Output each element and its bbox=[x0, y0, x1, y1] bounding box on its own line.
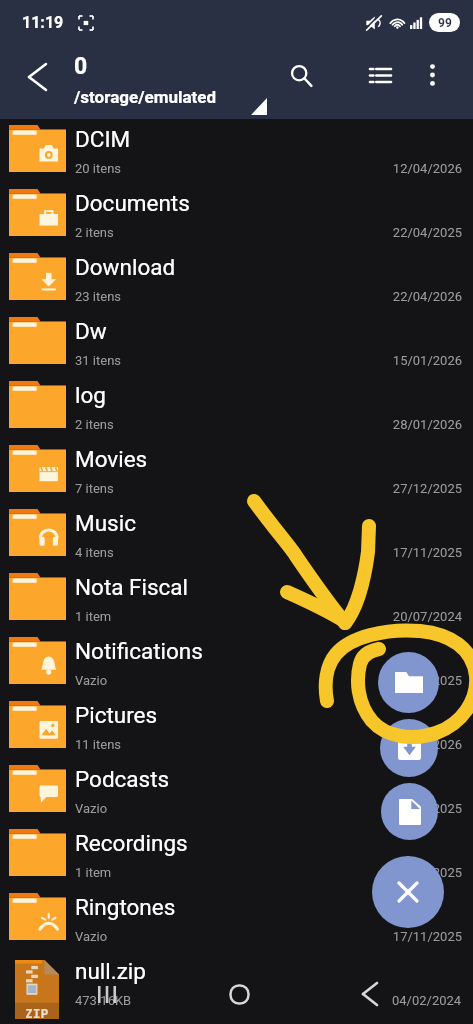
button[interactable]: Movies bbox=[0, 439, 473, 503]
button[interactable]: log bbox=[0, 375, 473, 439]
staticText: Recordings bbox=[75, 830, 188, 856]
button[interactable]: Documents bbox=[0, 183, 473, 247]
staticText: 11 itens bbox=[75, 737, 122, 752]
button[interactable]: Import bbox=[380, 719, 438, 777]
staticText: 1 item bbox=[75, 609, 112, 624]
staticText: 17/11/2025 bbox=[392, 929, 462, 944]
staticText: 13/11/2025 bbox=[392, 865, 462, 880]
staticText: 2 itens bbox=[75, 225, 114, 240]
staticText: 27/12/2025 bbox=[392, 481, 462, 496]
button[interactable]: Close bbox=[372, 856, 444, 928]
button[interactable]: Dw bbox=[0, 311, 473, 375]
staticText: Nota Fiscal bbox=[75, 574, 189, 600]
button[interactable]: Ringtones bbox=[0, 887, 473, 951]
button[interactable]: DCIM bbox=[0, 119, 473, 183]
button[interactable]: Back bbox=[348, 972, 392, 1016]
staticText: Documents bbox=[75, 190, 190, 216]
staticText: ZIP bbox=[25, 1004, 49, 1022]
button[interactable]: Home bbox=[217, 972, 261, 1016]
button[interactable]: Back bbox=[16, 56, 58, 98]
staticText: Dw bbox=[75, 318, 107, 344]
staticText: Vazio bbox=[75, 801, 108, 816]
button[interactable]: Podcasts bbox=[0, 759, 473, 823]
staticText: Vazio bbox=[75, 929, 108, 944]
staticText: Movies bbox=[75, 446, 148, 472]
staticText: 12/04/2026 bbox=[392, 161, 462, 176]
staticText: Ringtones bbox=[75, 894, 176, 920]
staticText: 473.16KB bbox=[75, 993, 132, 1008]
staticText: Download bbox=[75, 254, 176, 280]
staticText: DCIM bbox=[75, 126, 131, 152]
staticText: Vazio bbox=[75, 673, 108, 688]
staticText: 4 itens bbox=[75, 545, 114, 560]
button[interactable]: View mode bbox=[358, 53, 402, 97]
staticText: 13/11/2025 bbox=[392, 673, 462, 688]
button[interactable]: Download bbox=[0, 247, 473, 311]
staticText: 7 itens bbox=[75, 481, 114, 496]
staticText: 2 itens bbox=[75, 417, 114, 432]
staticText: 15/01/2026 bbox=[392, 353, 462, 368]
button[interactable]: Nota Fiscal bbox=[0, 567, 473, 631]
staticText: 04/02/2024 bbox=[392, 993, 462, 1008]
staticText: 13/11/2025 bbox=[392, 801, 462, 816]
button[interactable]: Recents bbox=[87, 974, 127, 1014]
staticText: 31 itens bbox=[75, 353, 122, 368]
staticText: 20/07/2024 bbox=[392, 609, 462, 624]
staticText: 11:19 bbox=[22, 13, 64, 32]
staticText: null.zip bbox=[75, 958, 146, 984]
staticText: 23 itens bbox=[75, 289, 122, 304]
staticText: 20 itens bbox=[75, 161, 122, 176]
button[interactable]: Search bbox=[279, 53, 323, 97]
staticText: 99 bbox=[438, 16, 452, 30]
button[interactable]: Pictures bbox=[0, 695, 473, 759]
staticText: 22/04/2026 bbox=[392, 737, 462, 752]
button[interactable]: Music bbox=[0, 503, 473, 567]
staticText: Podcasts bbox=[75, 766, 170, 792]
button[interactable]: Notifications bbox=[0, 631, 473, 695]
staticText: Pictures bbox=[75, 702, 158, 728]
button[interactable]: New folder bbox=[378, 652, 439, 713]
button[interactable]: ZIP bbox=[0, 951, 473, 1015]
staticText: 1 item bbox=[75, 865, 112, 880]
button[interactable]: More options bbox=[410, 53, 454, 97]
button[interactable]: New file bbox=[381, 783, 438, 840]
staticText: Music bbox=[75, 510, 136, 536]
staticText: 22/04/2026 bbox=[392, 289, 462, 304]
staticText: 17/11/2025 bbox=[392, 545, 462, 560]
staticText: 22/04/2025 bbox=[392, 225, 462, 240]
staticText: /storage/emulated bbox=[74, 87, 217, 107]
staticText: Notifications bbox=[75, 638, 203, 664]
button[interactable]: Recordings bbox=[0, 823, 473, 887]
staticText: log bbox=[75, 382, 106, 408]
staticText: 0 bbox=[74, 53, 88, 80]
staticText: 28/01/2026 bbox=[392, 417, 462, 432]
